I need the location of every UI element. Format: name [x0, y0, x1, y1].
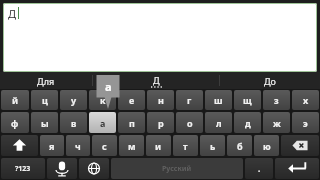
- staticText: х: [303, 94, 309, 106]
- staticText: а: [105, 79, 112, 94]
- staticText: г: [187, 94, 192, 106]
- staticText: н: [158, 94, 164, 106]
- staticText: м: [128, 140, 136, 152]
- staticText: ?123: [15, 164, 31, 174]
- button[interactable]: ?123: [1, 158, 45, 179]
- button[interactable]: .: [245, 158, 273, 179]
- staticText: Д: [8, 6, 17, 21]
- button[interactable]: Для: [0, 72, 92, 89]
- button[interactable]: й: [1, 90, 29, 110]
- staticText: До: [264, 75, 276, 87]
- button[interactable]: ю: [254, 135, 279, 156]
- button[interactable]: Д: [3, 3, 317, 72]
- button[interactable]: ы: [31, 112, 58, 133]
- button[interactable]: ь: [200, 135, 225, 156]
- staticText: к: [100, 94, 106, 106]
- button[interactable]: о: [176, 112, 203, 133]
- button[interactable]: ф: [1, 112, 29, 133]
- staticText: б: [237, 140, 243, 152]
- button[interactable]: Д: [93, 72, 219, 89]
- staticText: Д: [153, 74, 160, 86]
- button[interactable]: Enter: [275, 158, 319, 179]
- staticText: ь: [210, 140, 216, 152]
- staticText: я: [49, 140, 55, 152]
- staticText: э: [303, 117, 308, 129]
- button[interactable]: Change language: [79, 158, 109, 179]
- button[interactable]: Voice input: [47, 158, 77, 179]
- button[interactable]: Backspace: [281, 135, 319, 156]
- staticText: д: [245, 117, 251, 129]
- staticText: з: [274, 94, 279, 106]
- staticText: Для: [37, 75, 55, 87]
- staticText: о: [187, 117, 193, 129]
- button[interactable]: и: [146, 135, 171, 156]
- button[interactable]: л: [205, 112, 232, 133]
- button[interactable]: ш: [205, 90, 232, 110]
- staticText: ф: [11, 117, 19, 129]
- button[interactable]: Shift: [1, 135, 38, 156]
- staticText: а: [100, 117, 106, 129]
- staticText: л: [216, 117, 222, 129]
- staticText: р: [158, 117, 164, 129]
- staticText: ш: [214, 94, 223, 106]
- button[interactable]: е: [118, 90, 145, 110]
- button[interactable]: г: [176, 90, 203, 110]
- staticText: т: [183, 140, 188, 152]
- staticText: и: [155, 140, 162, 152]
- staticText: Русский: [162, 164, 192, 174]
- button[interactable]: т: [173, 135, 198, 156]
- button[interactable]: д: [234, 112, 261, 133]
- button[interactable]: у: [60, 90, 87, 110]
- staticText: с: [102, 140, 107, 152]
- button[interactable]: с: [92, 135, 117, 156]
- staticText: е: [129, 94, 135, 106]
- button[interactable]: ч: [66, 135, 90, 156]
- staticText: в: [71, 117, 77, 129]
- staticText: щ: [243, 94, 252, 106]
- button[interactable]: з: [263, 90, 290, 110]
- button[interactable]: н: [147, 90, 174, 110]
- staticText: ы: [41, 117, 49, 129]
- button[interactable]: в: [60, 112, 87, 133]
- button[interactable]: я: [40, 135, 64, 156]
- staticText: п: [129, 117, 135, 129]
- staticText: ц: [42, 94, 48, 106]
- staticText: .: [258, 163, 261, 174]
- button[interactable]: м: [119, 135, 144, 156]
- staticText: ю: [263, 140, 271, 152]
- button[interactable]: б: [227, 135, 252, 156]
- button[interactable]: ж: [263, 112, 290, 133]
- staticText: ж: [273, 117, 281, 129]
- button[interactable]: э: [292, 112, 319, 133]
- button[interactable]: х: [292, 90, 319, 110]
- staticText: й: [12, 94, 19, 106]
- button[interactable]: щ: [234, 90, 261, 110]
- button[interactable]: До: [220, 72, 320, 89]
- staticText: у: [71, 94, 77, 106]
- button[interactable]: р: [147, 112, 174, 133]
- button[interactable]: к: [89, 90, 116, 110]
- button[interactable]: ц: [31, 90, 58, 110]
- button[interactable]: а: [89, 112, 116, 133]
- button[interactable]: п: [118, 112, 145, 133]
- button[interactable]: Русский: [111, 158, 243, 179]
- staticText: ч: [75, 140, 81, 152]
